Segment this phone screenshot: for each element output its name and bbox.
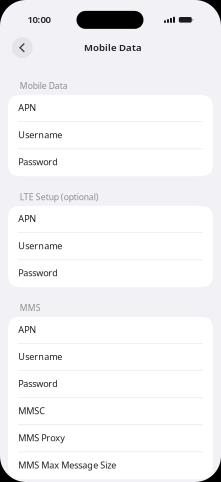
button[interactable]: APN [8, 95, 213, 122]
button[interactable]: Username [8, 344, 213, 371]
staticText: APN [18, 323, 36, 335]
staticText: Username [18, 239, 62, 252]
staticText: 10:00 [27, 13, 50, 26]
button[interactable]: APN [8, 317, 213, 344]
button[interactable]: MMS Proxy [8, 425, 213, 452]
button[interactable]: Back [12, 37, 33, 58]
staticText: Username [18, 128, 62, 141]
staticText: MMS Proxy [18, 432, 65, 444]
button[interactable]: APN [8, 206, 213, 233]
button[interactable]: Password [8, 260, 213, 287]
staticText: APN [18, 101, 36, 114]
staticText: Password [18, 377, 58, 390]
staticText: LTE Setup (optional) [20, 191, 99, 203]
staticText: MMS Max Message Size [18, 459, 116, 471]
button[interactable]: MMSC [8, 398, 213, 425]
button[interactable]: Username [8, 233, 213, 260]
staticText: APN [18, 212, 36, 225]
button[interactable]: Password [8, 149, 213, 176]
staticText: Username [18, 350, 62, 363]
staticText: MMS [20, 302, 41, 313]
button[interactable]: Password [8, 371, 213, 398]
button[interactable]: MMS Max Message Size [8, 452, 213, 479]
staticText: Mobile Data [20, 80, 68, 91]
staticText: Password [18, 267, 58, 279]
staticText: Password [18, 156, 58, 168]
staticText: Mobile Data [84, 41, 142, 54]
button[interactable]: Username [8, 122, 213, 149]
staticText: MMSC [18, 404, 45, 417]
